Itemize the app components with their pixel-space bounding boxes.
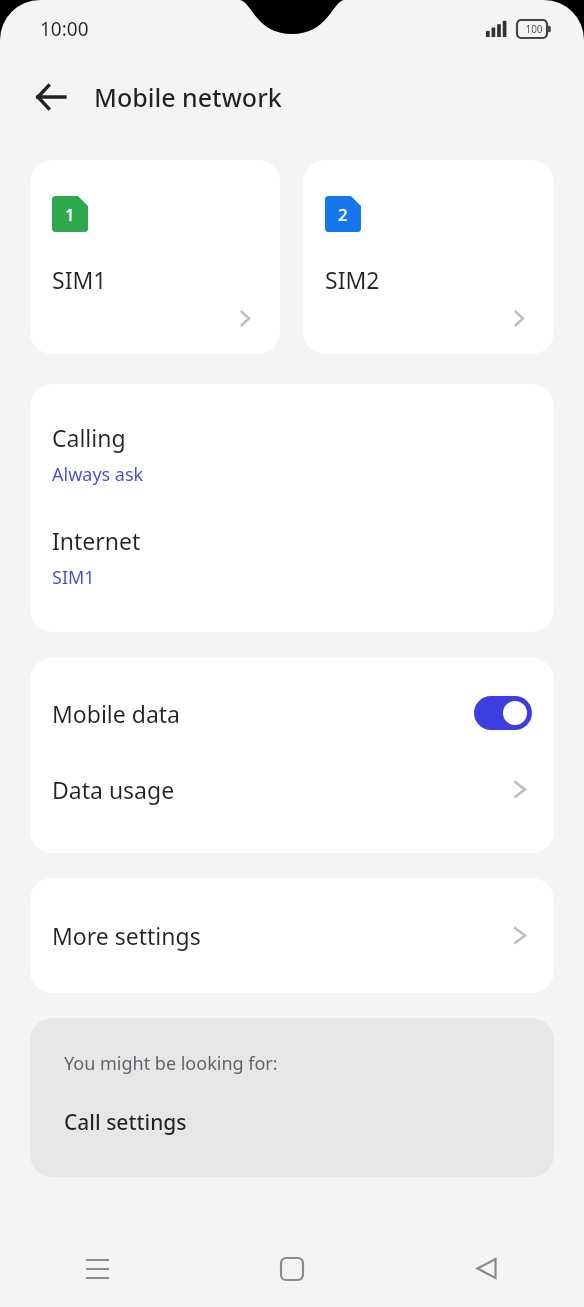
- button[interactable]: Data usage: [30, 750, 554, 853]
- staticText: 100: [525, 22, 543, 36]
- staticText: Always ask: [52, 462, 144, 487]
- staticText: Calling: [52, 422, 126, 453]
- staticText: SIM1: [52, 264, 107, 295]
- button[interactable]: More settings: [30, 878, 554, 993]
- button[interactable]: Back: [20, 66, 82, 128]
- button[interactable]: 1: [30, 160, 280, 354]
- staticText: More settings: [52, 920, 511, 951]
- staticText: Data usage: [52, 774, 511, 805]
- staticText: Internet: [52, 525, 141, 556]
- staticText: SIM1: [52, 565, 95, 590]
- button[interactable]: Home: [194, 1230, 389, 1307]
- button[interactable]: Mobile data: [30, 658, 554, 750]
- button[interactable]: Back: [389, 1230, 584, 1307]
- staticText: You might be looking for:: [64, 1051, 278, 1076]
- staticText: 10:00: [40, 16, 89, 42]
- staticText: Mobile network: [94, 80, 282, 114]
- staticText: Mobile data: [52, 698, 474, 729]
- button[interactable]: Calling: [30, 384, 554, 495]
- staticText: SIM2: [325, 264, 380, 295]
- button[interactable]: Recents: [0, 1230, 194, 1307]
- staticText: 1: [65, 203, 75, 226]
- button[interactable]: Internet: [30, 495, 554, 632]
- staticText: 2: [338, 203, 348, 226]
- button[interactable]: Call settings: [30, 1076, 554, 1177]
- button[interactable]: 2: [303, 160, 554, 354]
